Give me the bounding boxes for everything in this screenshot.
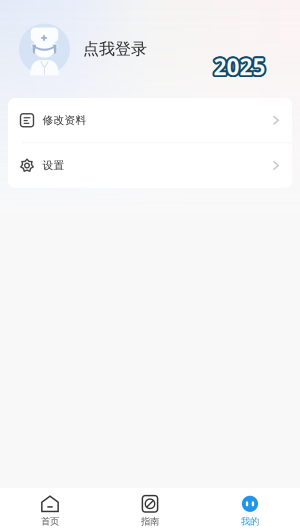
button[interactable]: 首页 bbox=[0, 488, 100, 530]
staticText: 首页 bbox=[41, 516, 59, 527]
staticText: 2025 bbox=[212, 50, 264, 80]
button[interactable]: 指南 bbox=[100, 488, 200, 530]
staticText: 我的 bbox=[241, 516, 259, 527]
button[interactable]: 修改资料 bbox=[8, 98, 292, 142]
staticText: 2025 bbox=[215, 51, 267, 81]
staticText: 2025 bbox=[215, 51, 267, 81]
staticText: 2025 bbox=[214, 50, 266, 80]
staticText: 2025 bbox=[212, 51, 264, 81]
staticText: 2025 bbox=[212, 52, 264, 82]
staticText: 2025 bbox=[214, 53, 266, 83]
staticText: 修改资料 bbox=[42, 114, 86, 127]
staticText: 2025 bbox=[215, 52, 267, 82]
staticText: 2025 bbox=[212, 53, 264, 83]
staticText: 指南 bbox=[141, 516, 159, 527]
staticText: 2025 bbox=[215, 53, 267, 83]
staticText: 2025 bbox=[213, 53, 265, 83]
staticText: 2025 bbox=[215, 50, 267, 80]
button[interactable]: 我的 bbox=[200, 488, 300, 530]
staticText: 2025 bbox=[212, 51, 264, 81]
button[interactable]: 设置 bbox=[8, 143, 292, 188]
staticText: 点我登录 bbox=[83, 39, 147, 59]
staticText: 2025 bbox=[213, 53, 265, 83]
staticText: 2025 bbox=[213, 50, 265, 80]
staticText: 设置 bbox=[42, 159, 64, 172]
button[interactable]: 点我登录 bbox=[0, 23, 147, 74]
staticText: 2025 bbox=[213, 51, 265, 81]
staticText: 2025 bbox=[213, 50, 265, 80]
